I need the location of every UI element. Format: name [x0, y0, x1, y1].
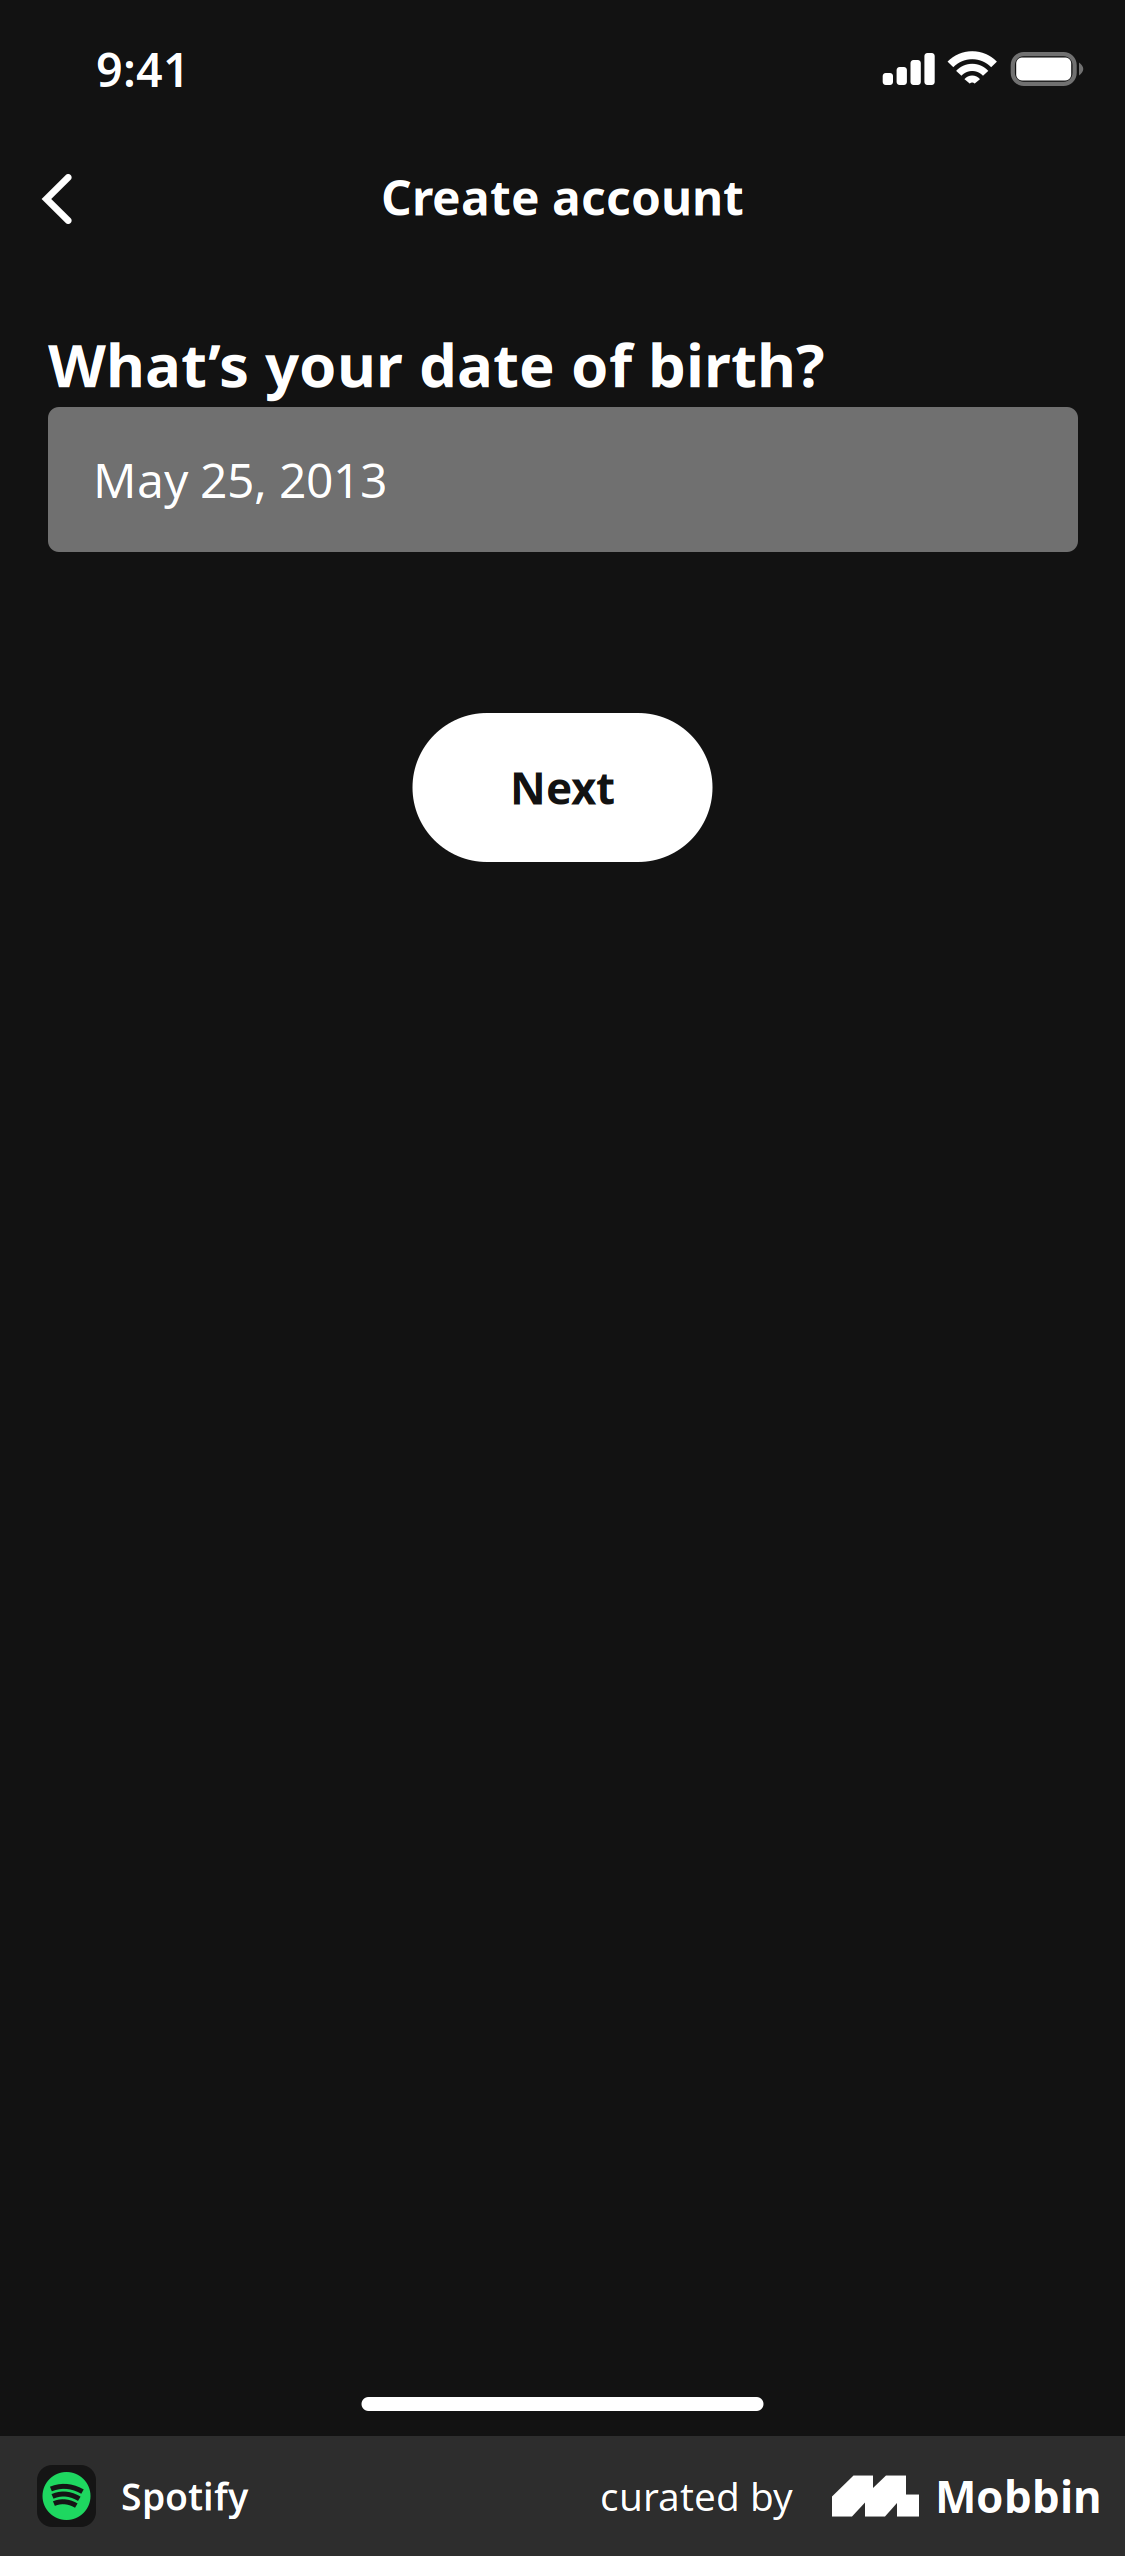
- staticText: Spotify: [121, 2471, 248, 2521]
- staticText: Next: [510, 758, 615, 817]
- button[interactable]: May 25, 2013: [48, 407, 1078, 552]
- staticText: Mobbin: [935, 2467, 1102, 2525]
- staticText: What’s your date of birth?: [48, 324, 825, 404]
- staticText: May 25, 2013: [93, 448, 387, 511]
- staticText: Create account: [381, 165, 744, 229]
- staticText: curated by: [600, 2470, 793, 2522]
- staticText: 9:41: [96, 38, 190, 100]
- button[interactable]: Back: [0, 153, 89, 241]
- button[interactable]: Next: [412, 713, 712, 862]
